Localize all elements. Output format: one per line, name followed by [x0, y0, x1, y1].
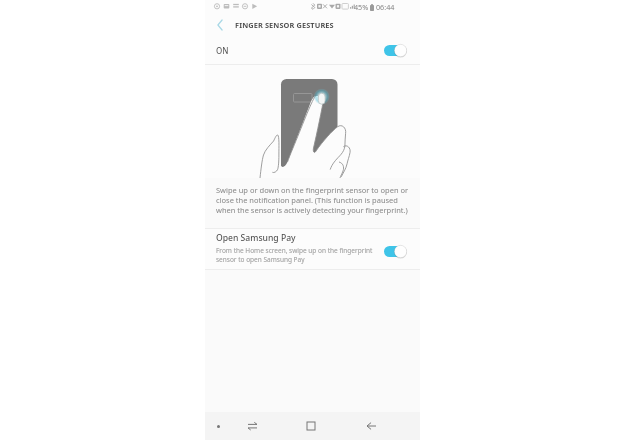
button[interactable]: Home — [298, 412, 324, 440]
button[interactable]: Hide keyboard — [207, 412, 230, 440]
button[interactable]: Recents — [239, 412, 265, 440]
staticText: ON — [216, 45, 229, 56]
staticText: Swipe up or down on the fingerprint sens… — [216, 185, 409, 195]
staticText: when the sensor is actively detecting yo… — [216, 205, 408, 215]
button[interactable]: Back — [358, 412, 384, 440]
staticText: 06:44 — [376, 2, 395, 12]
staticText: close the notification panel. (This func… — [216, 195, 398, 205]
staticText: FINGER SENSOR GESTURES — [235, 20, 334, 30]
staticText: sensor to open Samsung Pay — [216, 255, 305, 264]
button[interactable]: Back — [205, 14, 235, 36]
staticText: Open Samsung Pay — [216, 232, 296, 244]
button[interactable]: Open Samsung Pay — [205, 229, 420, 269]
button[interactable]: ON — [205, 36, 420, 64]
staticText: 45% — [354, 2, 369, 12]
staticText: From the Home screen, swipe up on the fi… — [216, 246, 373, 255]
